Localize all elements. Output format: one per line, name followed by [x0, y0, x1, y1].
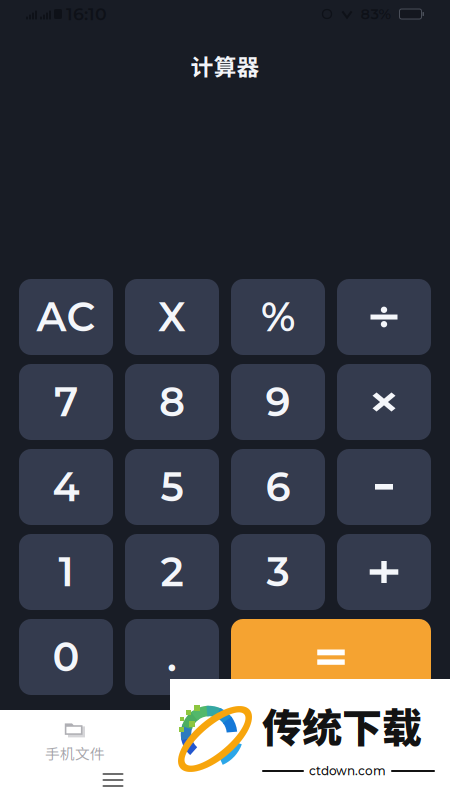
staticText: 1: [58, 548, 73, 596]
staticText: 0: [52, 633, 79, 681]
staticText: X: [158, 293, 186, 341]
button[interactable]: %: [231, 279, 325, 355]
staticText: 2: [160, 548, 183, 596]
staticText: 6: [265, 463, 290, 511]
staticText: 3: [266, 548, 289, 596]
button[interactable]: 9: [231, 364, 325, 440]
button[interactable]: 5: [125, 449, 219, 525]
staticText: 计算器: [190, 49, 259, 82]
button[interactable]: 3: [231, 534, 325, 610]
button[interactable]: X: [125, 279, 219, 355]
button[interactable]: 0: [19, 619, 113, 695]
button[interactable]: Menu: [85, 766, 141, 794]
button[interactable]: AC: [19, 279, 113, 355]
staticText: %: [261, 293, 295, 341]
button[interactable]: 8: [125, 364, 219, 440]
button[interactable]: 1: [19, 534, 113, 610]
staticText: 手机文件: [45, 742, 105, 764]
staticText: 传统下载: [262, 696, 422, 754]
staticText: 7: [54, 378, 78, 426]
staticText: 5: [160, 463, 183, 511]
button[interactable]: Equals: [231, 619, 431, 695]
button[interactable]: Subtract: [337, 449, 431, 525]
staticText: 8: [159, 378, 185, 426]
button[interactable]: .: [125, 619, 219, 695]
staticText: AC: [36, 293, 95, 341]
button[interactable]: 7: [19, 364, 113, 440]
button[interactable]: 2: [125, 534, 219, 610]
staticText: 9: [265, 378, 290, 426]
button[interactable]: Multiply: [337, 364, 431, 440]
staticText: 16:10: [66, 3, 107, 24]
button[interactable]: 6: [231, 449, 325, 525]
button[interactable]: Divide: [337, 279, 431, 355]
button[interactable]: 手机文件: [0, 720, 150, 766]
staticText: 4: [52, 463, 79, 511]
button[interactable]: Add: [337, 534, 431, 610]
staticText: .: [167, 633, 177, 681]
button[interactable]: 4: [19, 449, 113, 525]
staticText: ctdown.com: [309, 764, 386, 778]
staticText: 83%: [360, 5, 391, 23]
